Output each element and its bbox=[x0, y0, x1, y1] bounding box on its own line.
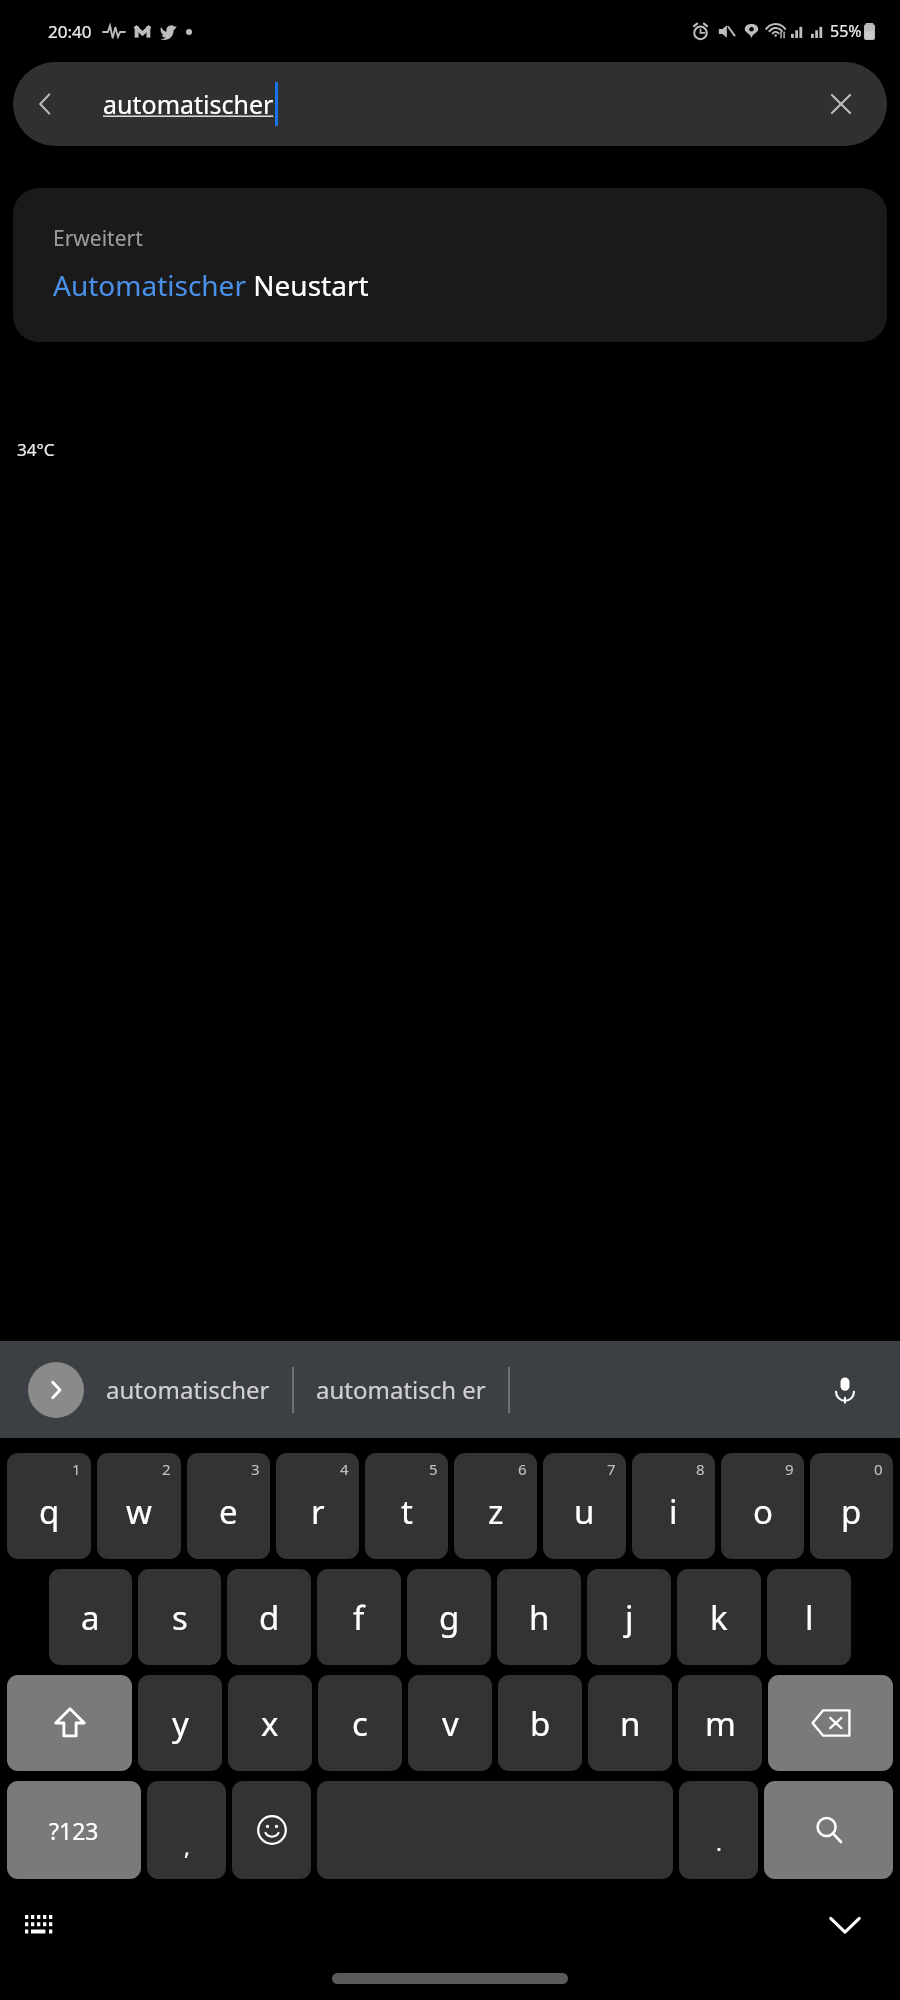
button[interactable]: ?123 bbox=[7, 1781, 141, 1879]
staticText: ?123 bbox=[49, 1815, 99, 1846]
staticText: k bbox=[710, 1595, 728, 1640]
staticText: o bbox=[753, 1489, 773, 1534]
button[interactable]: Shift bbox=[7, 1675, 132, 1771]
staticText: 34°C bbox=[17, 438, 55, 461]
staticText: n bbox=[620, 1701, 641, 1746]
staticText: 5 bbox=[429, 1459, 438, 1479]
button[interactable]: 3 bbox=[187, 1453, 270, 1559]
button[interactable]: n bbox=[588, 1675, 672, 1771]
button[interactable]: . bbox=[679, 1781, 758, 1879]
staticText: s bbox=[172, 1595, 188, 1640]
staticText: Erweitert bbox=[53, 224, 143, 253]
button[interactable]: 8 bbox=[632, 1453, 715, 1559]
staticText: i bbox=[669, 1489, 678, 1534]
staticText: r bbox=[311, 1489, 325, 1534]
staticText: automatischer bbox=[106, 1373, 270, 1406]
button[interactable]: Emoji bbox=[232, 1781, 311, 1879]
staticText: p bbox=[841, 1489, 862, 1534]
button[interactable]: 0 bbox=[810, 1453, 893, 1559]
button[interactable]: d bbox=[227, 1569, 311, 1665]
button[interactable]: Search bbox=[764, 1781, 893, 1879]
button[interactable]: v bbox=[408, 1675, 492, 1771]
button[interactable]: j bbox=[587, 1569, 671, 1665]
staticText: j bbox=[625, 1595, 634, 1640]
staticText: 6 bbox=[518, 1459, 527, 1479]
staticText: b bbox=[530, 1701, 551, 1746]
staticText: c bbox=[352, 1701, 368, 1746]
staticText: 1 bbox=[72, 1459, 81, 1479]
button[interactable]: 2 bbox=[97, 1453, 181, 1559]
button[interactable]: 6 bbox=[454, 1453, 537, 1559]
staticText: 2 bbox=[162, 1459, 171, 1479]
button[interactable]: c bbox=[318, 1675, 402, 1771]
staticText: 7 bbox=[607, 1459, 616, 1479]
staticText: automatisch er bbox=[316, 1373, 486, 1406]
staticText: , bbox=[184, 1831, 190, 1861]
staticText: l bbox=[805, 1595, 814, 1640]
staticText: Neustart bbox=[246, 266, 369, 304]
staticText: h bbox=[529, 1595, 550, 1640]
button[interactable]: 4 bbox=[276, 1453, 359, 1559]
staticText: 8 bbox=[696, 1459, 705, 1479]
button[interactable]: b bbox=[498, 1675, 582, 1771]
staticText: 0 bbox=[874, 1459, 883, 1479]
button[interactable]: g bbox=[407, 1569, 491, 1665]
button[interactable]: 9 bbox=[721, 1453, 804, 1559]
button[interactable]: Change keyboard bbox=[14, 1900, 66, 1952]
button[interactable]: automatisch er bbox=[316, 1373, 486, 1406]
button[interactable]: automatischer bbox=[106, 1373, 270, 1406]
button[interactable]: Clear bbox=[813, 76, 869, 132]
staticText: automatischer bbox=[103, 87, 274, 121]
staticText: Automatischer bbox=[53, 266, 246, 304]
button[interactable]: , bbox=[147, 1781, 226, 1879]
button[interactable]: a bbox=[49, 1569, 132, 1665]
button[interactable]: Backspace bbox=[768, 1675, 893, 1771]
staticText: d bbox=[259, 1595, 280, 1640]
staticText: f bbox=[353, 1595, 365, 1640]
button[interactable]: h bbox=[497, 1569, 581, 1665]
staticText: e bbox=[219, 1489, 238, 1534]
button[interactable]: l bbox=[767, 1569, 851, 1665]
button[interactable]: f bbox=[317, 1569, 401, 1665]
button[interactable]: y bbox=[138, 1675, 222, 1771]
button[interactable]: k bbox=[677, 1569, 761, 1665]
staticText: y bbox=[172, 1701, 189, 1746]
staticText: 4 bbox=[340, 1459, 349, 1479]
staticText: z bbox=[488, 1489, 504, 1534]
staticText: u bbox=[574, 1489, 595, 1534]
staticText: 55% bbox=[830, 20, 862, 42]
button[interactable]: Voice input bbox=[814, 1359, 876, 1421]
staticText: m bbox=[705, 1701, 736, 1746]
button[interactable]: Hide keyboard bbox=[816, 1896, 874, 1954]
staticText: a bbox=[81, 1595, 100, 1640]
staticText: x bbox=[261, 1701, 279, 1746]
button[interactable]: 1 bbox=[7, 1453, 91, 1559]
button[interactable]: 5 bbox=[365, 1453, 448, 1559]
button[interactable]: m bbox=[678, 1675, 762, 1771]
staticText: g bbox=[439, 1595, 460, 1640]
staticText: w bbox=[126, 1489, 152, 1534]
staticText: 9 bbox=[785, 1459, 794, 1479]
staticText: t bbox=[401, 1489, 413, 1534]
button[interactable]: x bbox=[228, 1675, 312, 1771]
staticText: . bbox=[716, 1827, 722, 1857]
button[interactable]: 7 bbox=[543, 1453, 626, 1559]
staticText: 3 bbox=[251, 1459, 260, 1479]
staticText: 20:40 bbox=[48, 20, 92, 43]
button[interactable]: More suggestions bbox=[28, 1362, 84, 1418]
button[interactable]: s bbox=[138, 1569, 221, 1665]
button[interactable]: Back bbox=[13, 72, 77, 136]
button[interactable]: Erweitert bbox=[13, 188, 887, 342]
staticText: v bbox=[442, 1701, 459, 1746]
staticText: q bbox=[39, 1489, 60, 1534]
